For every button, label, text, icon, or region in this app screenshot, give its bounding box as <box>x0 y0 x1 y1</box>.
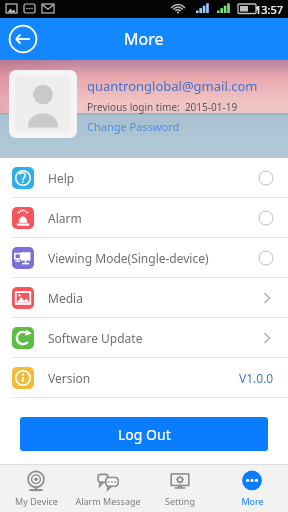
staticText: Change Password <box>87 119 180 134</box>
button[interactable]: Change Password <box>87 119 180 134</box>
staticText: Alarm Message <box>75 495 141 507</box>
staticText: Previous login time: 2015-01-19 <box>87 100 238 114</box>
staticText: Software Update <box>48 330 260 346</box>
button[interactable]: Setting <box>144 465 216 512</box>
staticText: Help <box>48 170 258 186</box>
button[interactable]: My Device <box>0 465 72 512</box>
button[interactable]: More <box>216 465 288 512</box>
staticText: My Device <box>15 495 58 507</box>
button[interactable]: Software Update <box>0 318 288 357</box>
button[interactable]: Help <box>0 158 288 197</box>
staticText: V1.0.0 <box>239 370 274 386</box>
staticText: More <box>124 28 164 50</box>
button[interactable]: Version <box>0 358 288 397</box>
staticText: Setting <box>165 495 195 507</box>
staticText: More <box>241 495 264 507</box>
button[interactable]: Alarm <box>0 198 288 237</box>
button[interactable]: Back <box>8 24 38 54</box>
staticText: quantronglobal@gmail.com <box>87 77 258 95</box>
button[interactable]: Avatar <box>9 70 77 138</box>
staticText: Media <box>48 290 260 306</box>
staticText: Log Out <box>118 425 171 444</box>
button[interactable]: Log Out <box>20 417 268 451</box>
button[interactable]: Media <box>0 278 288 317</box>
staticText: 13:57 <box>255 2 284 17</box>
staticText: Viewing Mode(Single-device) <box>48 250 258 266</box>
staticText: Alarm <box>48 210 258 226</box>
button[interactable]: Viewing Mode(Single-device) <box>0 238 288 277</box>
button[interactable]: Alarm Message <box>72 465 144 512</box>
staticText: Version <box>48 370 239 386</box>
